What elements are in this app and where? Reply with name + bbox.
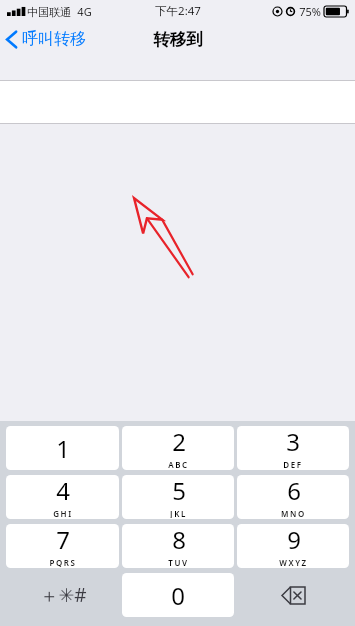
button[interactable]: ＋✳# [6, 573, 119, 617]
button[interactable]: 7 [6, 524, 119, 568]
staticText: 4 [56, 475, 70, 507]
staticText: 0 [171, 579, 185, 612]
staticText: ＋✳# [39, 582, 87, 608]
staticText: 转移到 [153, 29, 203, 50]
staticText: WXYZ [279, 557, 308, 567]
staticText: 75% [299, 4, 321, 19]
button[interactable]: 9 [237, 524, 349, 568]
button[interactable]: 4 [6, 475, 119, 519]
staticText: DEF [283, 459, 303, 469]
staticText: TUV [168, 557, 189, 567]
staticText: 6 [287, 475, 301, 507]
staticText: 7 [56, 524, 70, 556]
staticText: 1 [56, 432, 70, 465]
staticText: 中国联通 [27, 5, 71, 19]
staticText: 呼叫转移 [22, 29, 86, 49]
staticText: 2 [172, 426, 186, 458]
staticText: 5 [172, 475, 186, 507]
staticText: PQRS [49, 557, 77, 567]
button[interactable]: Delete [237, 573, 349, 617]
staticText: 8 [172, 524, 186, 556]
staticText: 3 [286, 426, 300, 458]
button[interactable]: 8 [122, 524, 234, 568]
button[interactable]: 6 [237, 475, 349, 519]
button[interactable]: 0 [122, 573, 234, 617]
staticText: 9 [287, 524, 301, 556]
button[interactable]: 1 [6, 426, 119, 470]
staticText: JKL [170, 508, 187, 518]
staticText: ABC [168, 459, 189, 469]
button[interactable]: 5 [122, 475, 234, 519]
button[interactable]: 3 [237, 426, 349, 470]
staticText: GHI [53, 508, 73, 518]
button[interactable]: 2 [122, 426, 234, 470]
staticText: 4G [77, 4, 92, 19]
staticText: 下午2:47 [155, 3, 201, 19]
button[interactable]: 呼叫转移 [0, 26, 94, 52]
staticText: MNO [281, 508, 306, 518]
